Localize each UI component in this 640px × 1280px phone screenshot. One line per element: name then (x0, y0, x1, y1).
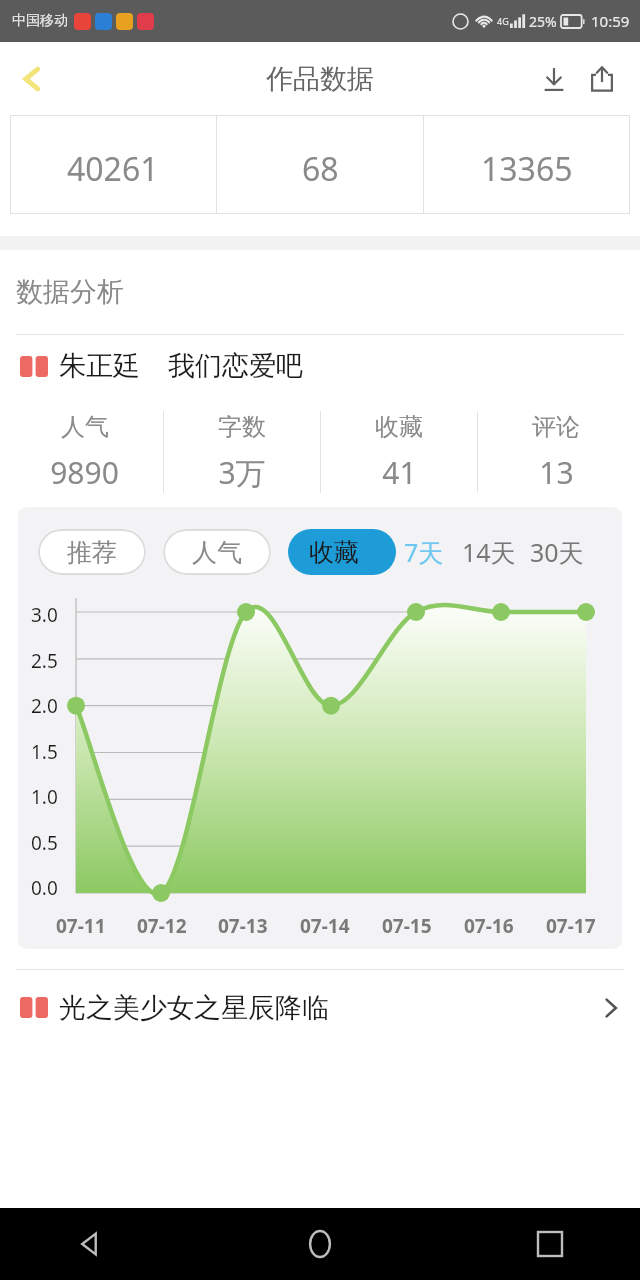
staticText: 9890 (50, 452, 119, 493)
staticText: 作品数据 (266, 62, 374, 96)
staticText: 数据分析 (16, 275, 124, 309)
button[interactable]: 光之美少女之星辰降临 (20, 970, 622, 1045)
staticText: 07-12 (137, 913, 187, 939)
button[interactable]: Home (290, 1214, 350, 1274)
staticText: 10:59 (591, 11, 630, 31)
button[interactable]: 朱正廷 (20, 335, 640, 397)
staticText: 07-16 (464, 913, 514, 939)
button[interactable]: 人气 (163, 529, 271, 575)
button[interactable]: 字数 (164, 397, 320, 507)
button[interactable]: 人气 (6, 397, 163, 507)
staticText: 光之美少女之星辰降临 (59, 991, 329, 1025)
button[interactable]: 评论 (478, 397, 634, 507)
staticText: 0.5 (31, 830, 58, 856)
staticText: 收藏 (309, 537, 359, 568)
button[interactable]: Recents (520, 1214, 580, 1274)
staticText: 30天 (530, 535, 584, 569)
staticText: 13365 (481, 147, 573, 191)
button[interactable]: Back (8, 55, 56, 103)
staticText: 3.0 (31, 602, 58, 628)
staticText: 中国移动 (12, 12, 68, 30)
staticText: 推荐 (67, 537, 117, 568)
staticText: 0.0 (31, 875, 58, 901)
staticText: 40261 (67, 147, 159, 191)
staticText: 3万 (218, 452, 266, 493)
staticText: 人气 (192, 537, 242, 568)
button[interactable]: 30天 (530, 535, 584, 569)
staticText: 07-14 (300, 913, 350, 939)
button[interactable]: 68 (217, 115, 423, 214)
button[interactable]: 7天 (404, 535, 444, 569)
button[interactable]: 收藏 (288, 529, 396, 575)
staticText: 07-15 (382, 913, 432, 939)
button[interactable]: Share (578, 55, 626, 103)
button[interactable]: 收藏 (321, 397, 477, 507)
staticText: 41 (382, 452, 417, 493)
staticText: 朱正廷 (59, 349, 140, 383)
staticText: 1.0 (31, 784, 58, 810)
button[interactable]: Back (60, 1214, 120, 1274)
staticText: 人气 (61, 412, 109, 442)
button[interactable]: 40261 (10, 115, 216, 214)
button[interactable]: 14天 (462, 535, 516, 569)
staticText: 14天 (462, 535, 516, 569)
staticText: 7天 (404, 535, 444, 569)
staticText: 07-11 (56, 913, 106, 939)
button[interactable]: Download (530, 55, 578, 103)
staticText: 2.0 (31, 693, 58, 719)
staticText: 07-17 (546, 913, 596, 939)
staticText: 1.5 (31, 739, 58, 765)
staticText: 4G (497, 15, 509, 27)
staticText: 2.5 (31, 648, 58, 674)
button[interactable]: 13365 (424, 115, 630, 214)
staticText: 07-13 (218, 913, 268, 939)
staticText: 13 (539, 452, 574, 493)
staticText: 字数 (218, 412, 266, 442)
staticText: 我们恋爱吧 (168, 349, 303, 383)
staticText: 收藏 (375, 412, 423, 442)
staticText: 评论 (532, 412, 580, 442)
button[interactable]: 推荐 (38, 529, 146, 575)
staticText: 68 (302, 147, 339, 191)
staticText: 25% (529, 12, 557, 31)
